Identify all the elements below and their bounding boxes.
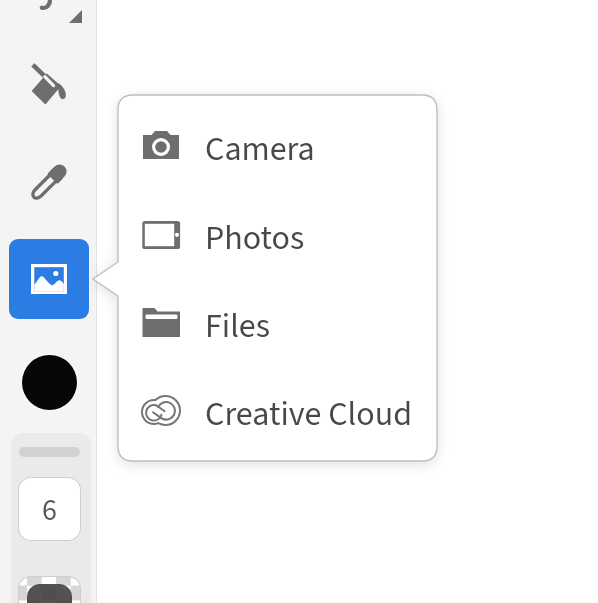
staticText: Creative Cloud [205,390,413,438]
button[interactable]: Brush tool [12,0,84,42]
staticText: Photos [205,214,305,262]
button[interactable]: 6 [18,477,81,541]
staticText: Camera [205,125,315,173]
button[interactable]: Paint bucket tool [25,64,71,110]
staticText: Files [205,302,270,350]
button[interactable]: Eyedropper tool [25,160,71,206]
staticText: 6 [42,489,57,532]
button[interactable]: Photos [118,203,437,267]
button[interactable]: Image tool, selected [9,239,89,319]
button[interactable]: Creative Cloud [118,379,437,443]
button[interactable]: Camera [118,114,437,178]
button[interactable]: Opacity swatch [18,576,81,603]
button[interactable]: Current colour black [21,354,78,411]
button[interactable]: Files [118,291,437,355]
